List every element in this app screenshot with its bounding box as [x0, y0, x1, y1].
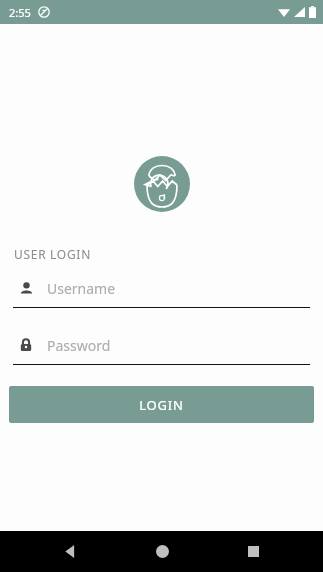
- staticText: Username: [47, 279, 116, 298]
- button[interactable]: LOGIN: [9, 386, 314, 423]
- button[interactable]: Recent apps: [231, 531, 275, 572]
- button[interactable]: Password: [13, 330, 310, 365]
- button[interactable]: Back: [48, 531, 92, 572]
- staticText: USER LOGIN: [14, 246, 91, 262]
- staticText: Password: [47, 336, 111, 355]
- button[interactable]: Home: [140, 531, 184, 572]
- button[interactable]: Username: [13, 273, 310, 308]
- staticText: 2:55: [9, 5, 31, 20]
- staticText: LOGIN: [139, 396, 184, 414]
